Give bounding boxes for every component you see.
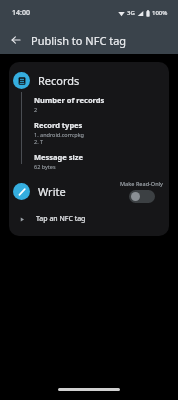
staticText: 62 bytes xyxy=(34,163,56,170)
staticText: 14:00 xyxy=(12,8,30,18)
button[interactable]: Make Read-Only xyxy=(120,180,163,203)
button[interactable]: Records xyxy=(9,68,169,92)
staticText: Publish to NFC tag xyxy=(31,33,127,48)
staticText: 100% xyxy=(152,9,168,17)
staticText: 2. T xyxy=(34,138,44,145)
staticText: Record types xyxy=(34,120,83,130)
staticText: Number of records xyxy=(34,95,105,105)
staticText: Write xyxy=(38,184,66,199)
button[interactable]: Tap an NFC tag xyxy=(9,212,169,226)
staticText: 1. android.com:pkg xyxy=(34,131,84,138)
button[interactable]: Write xyxy=(9,180,66,203)
staticText: Message size xyxy=(34,152,83,162)
staticText: 2 xyxy=(34,106,38,113)
staticText: 3G xyxy=(127,9,135,17)
staticText: Make Read-Only xyxy=(120,180,163,187)
staticText: Tap an NFC tag xyxy=(36,214,86,224)
staticText: Records xyxy=(38,73,80,88)
button[interactable]: Back xyxy=(6,30,26,50)
